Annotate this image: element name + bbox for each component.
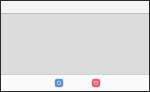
button[interactable]: Settings [53,77,65,89]
button[interactable]: Close [90,77,102,89]
